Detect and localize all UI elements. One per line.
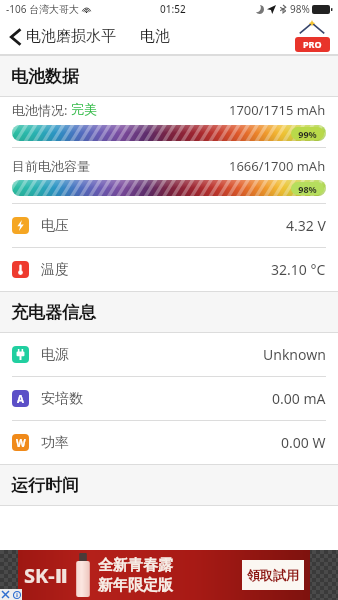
staticText: 1666/1700 mAh	[229, 157, 326, 175]
staticText: 电池磨损水平	[26, 27, 116, 46]
staticText: -106 台湾大哥大	[6, 2, 79, 16]
staticText: 4.32 V	[286, 216, 326, 235]
staticText: 全新青春露	[98, 556, 173, 575]
staticText: PRO	[303, 38, 322, 50]
button[interactable]: 电压	[0, 204, 338, 247]
staticText: 电压	[41, 217, 286, 235]
staticText: 目前电池容量	[12, 158, 229, 174]
staticText: A	[17, 392, 24, 406]
button[interactable]: PRO upgrade	[294, 20, 330, 52]
button[interactable]: 电池磨损水平	[8, 27, 118, 46]
button[interactable]: 温度	[0, 248, 338, 291]
button[interactable]: Ad info	[11, 589, 22, 600]
staticText: W	[16, 436, 26, 450]
staticText: 1700/1715 mAh	[229, 101, 326, 119]
button[interactable]: 領取試用	[242, 560, 304, 590]
staticText: 98%	[290, 2, 310, 16]
staticText: 温度	[41, 261, 271, 279]
button[interactable]: Close ad	[0, 589, 11, 600]
staticText: SK-Ⅱ	[24, 562, 68, 589]
staticText: 98%	[298, 183, 317, 195]
staticText: 領取試用	[247, 567, 299, 583]
staticText: 运行时间	[11, 475, 79, 496]
button[interactable]: Advertisement	[0, 550, 338, 600]
staticText: 0.00 mA	[272, 389, 326, 408]
staticText: 安培数	[41, 390, 272, 408]
staticText: 电池情况:	[12, 101, 71, 119]
button[interactable]: 电源	[0, 333, 338, 376]
staticText: 完美	[71, 101, 97, 117]
staticText: 新年限定版	[98, 576, 173, 595]
staticText: 充电器信息	[11, 302, 96, 323]
staticText: Unknown	[263, 345, 326, 364]
button[interactable]: A	[0, 377, 338, 420]
staticText: 99%	[298, 128, 317, 140]
button[interactable]: W	[0, 421, 338, 464]
staticText: 功率	[41, 434, 281, 452]
staticText: 32.10 °C	[271, 260, 326, 279]
staticText: 电池数据	[11, 66, 79, 87]
staticText: 电源	[41, 346, 263, 364]
staticText: 0.00 W	[281, 433, 326, 452]
staticText: 01:52	[160, 2, 186, 16]
staticText: 电池	[140, 27, 170, 46]
